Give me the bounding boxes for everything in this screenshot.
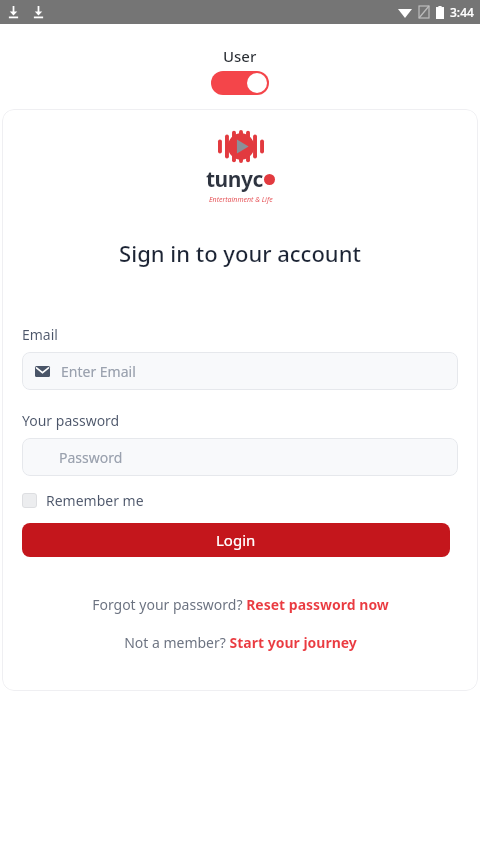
staticText: Remember me xyxy=(46,491,144,510)
staticText: Sign in to your account xyxy=(119,238,361,268)
staticText: User xyxy=(223,46,257,66)
staticText: Enter Email xyxy=(61,362,136,381)
button[interactable]: User role toggle xyxy=(211,71,269,95)
staticText: 3:44 xyxy=(450,4,474,20)
button[interactable]: Login xyxy=(22,523,450,557)
button[interactable]: Remember me xyxy=(22,491,144,510)
staticText: Email xyxy=(22,325,58,344)
staticText: Entertainment & Life xyxy=(209,195,273,205)
staticText: Forgot your password? Reset password now xyxy=(92,595,389,614)
button[interactable]: Enter Email xyxy=(22,352,458,390)
staticText: Not a member? Start your journey xyxy=(124,633,357,652)
button[interactable]: Password xyxy=(22,438,458,476)
staticText: Login xyxy=(216,530,256,550)
button[interactable]: Forgot your password? Reset password now xyxy=(92,595,389,614)
staticText: Your password xyxy=(22,411,120,430)
button[interactable]: Not a member? Start your journey xyxy=(124,633,357,652)
staticText: Password xyxy=(59,448,123,467)
staticText: tunyc xyxy=(206,165,263,194)
